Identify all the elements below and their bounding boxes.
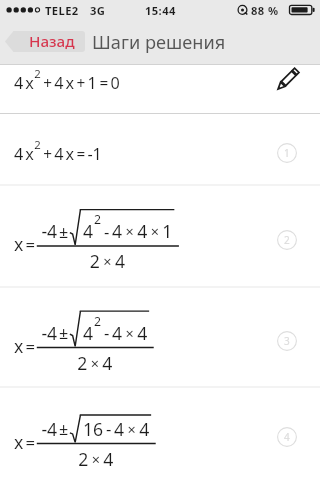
staticText: TELE2 [45, 3, 79, 18]
staticText: 3 [284, 334, 290, 348]
staticText: 4 [284, 430, 290, 444]
staticText: 3G [90, 3, 106, 18]
staticText: 15:44 [145, 3, 176, 18]
staticText: 2 [284, 233, 290, 247]
button[interactable]: 1 [0, 114, 320, 186]
button[interactable]: 2 [0, 186, 320, 288]
button[interactable]: Edit equation [272, 62, 304, 94]
staticText: 1 [284, 146, 290, 160]
staticText: Шаги решения [92, 30, 226, 55]
button[interactable]: 4 [0, 388, 320, 480]
button[interactable]: 3 [0, 288, 320, 388]
staticText: Назад [29, 31, 75, 52]
button[interactable]: Назад [5, 31, 85, 52]
staticText: 88 % [251, 3, 279, 18]
